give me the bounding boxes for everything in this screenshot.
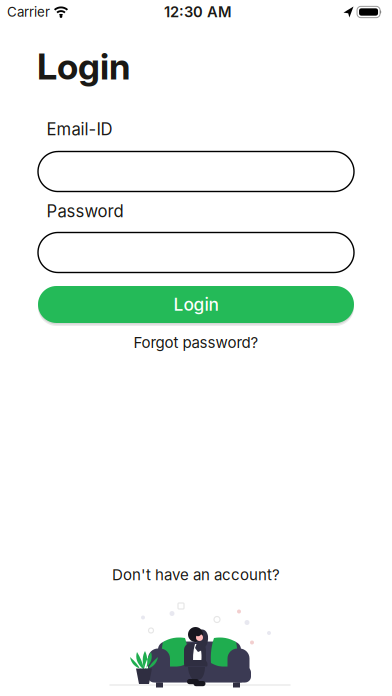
staticText: 12:30 AM: [164, 3, 232, 21]
staticText: Carrier: [7, 4, 50, 20]
staticText: Email-ID: [46, 119, 112, 139]
button[interactable]: Login: [0, 286, 392, 323]
button[interactable]: Don't have an account?: [112, 566, 280, 584]
staticText: Password: [46, 201, 123, 221]
staticText: Login: [173, 294, 218, 315]
staticText: Don't have an account?: [112, 566, 280, 584]
staticText: Login: [37, 44, 130, 88]
button[interactable]: Password: [0, 232, 392, 272]
button[interactable]: Forgot password?: [133, 333, 258, 352]
button[interactable]: Email-ID: [0, 151, 392, 191]
staticText: Forgot password?: [133, 333, 258, 352]
